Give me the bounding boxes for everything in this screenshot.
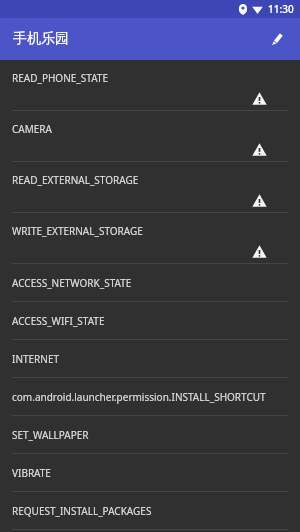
button[interactable]: REQUEST_INSTALL_PACKAGES bbox=[0, 492, 300, 530]
staticText: REQUEST_INSTALL_PACKAGES bbox=[12, 504, 152, 518]
button[interactable]: Edit bbox=[260, 22, 294, 56]
other: Warning bbox=[252, 142, 267, 157]
staticText: READ_PHONE_STATE bbox=[12, 71, 108, 85]
staticText: com.android.launcher.permission.INSTALL_… bbox=[12, 390, 266, 404]
staticText: 11:30 bbox=[268, 2, 294, 16]
other: Warning bbox=[252, 193, 267, 208]
button[interactable]: CAMERA bbox=[0, 111, 300, 162]
button[interactable]: ACCESS_WIFI_STATE bbox=[0, 302, 300, 340]
button[interactable]: SET_WALLPAPER bbox=[0, 416, 300, 454]
staticText: SET_WALLPAPER bbox=[12, 428, 89, 442]
button[interactable]: READ_PHONE_STATE bbox=[0, 60, 300, 111]
staticText: WRITE_EXTERNAL_STORAGE bbox=[12, 224, 143, 238]
staticText: READ_EXTERNAL_STORAGE bbox=[12, 173, 139, 187]
staticText: VIBRATE bbox=[12, 466, 51, 480]
button[interactable]: ACCESS_NETWORK_STATE bbox=[0, 264, 300, 302]
staticText: CAMERA bbox=[12, 122, 52, 136]
staticText: ACCESS_NETWORK_STATE bbox=[12, 276, 132, 290]
button[interactable]: VIBRATE bbox=[0, 454, 300, 492]
staticText: 手机乐园 bbox=[13, 30, 69, 48]
button[interactable]: com.android.launcher.permission.INSTALL_… bbox=[0, 378, 300, 416]
button[interactable]: WRITE_EXTERNAL_STORAGE bbox=[0, 213, 300, 264]
button[interactable]: READ_EXTERNAL_STORAGE bbox=[0, 162, 300, 213]
other: Warning bbox=[252, 244, 267, 259]
staticText: INTERNET bbox=[12, 352, 60, 366]
other: Warning bbox=[252, 91, 267, 106]
button[interactable]: INTERNET bbox=[0, 340, 300, 378]
staticText: ACCESS_WIFI_STATE bbox=[12, 314, 105, 328]
